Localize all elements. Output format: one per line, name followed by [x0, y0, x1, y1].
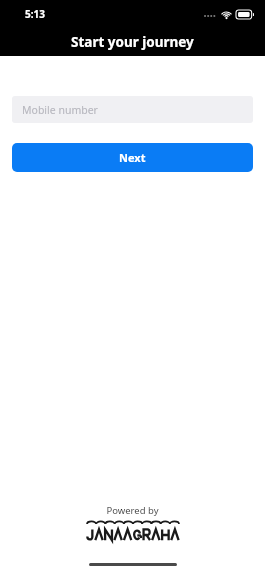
button[interactable]: Next	[12, 143, 253, 172]
staticText: Mobile number	[22, 103, 98, 117]
staticText: Powered by	[106, 504, 159, 517]
staticText: Start your journey	[71, 33, 194, 51]
staticText: Next	[119, 150, 146, 165]
staticText: 5:13	[25, 7, 45, 21]
other: Janaagraha	[87, 521, 179, 541]
button[interactable]: Mobile number	[12, 96, 253, 123]
